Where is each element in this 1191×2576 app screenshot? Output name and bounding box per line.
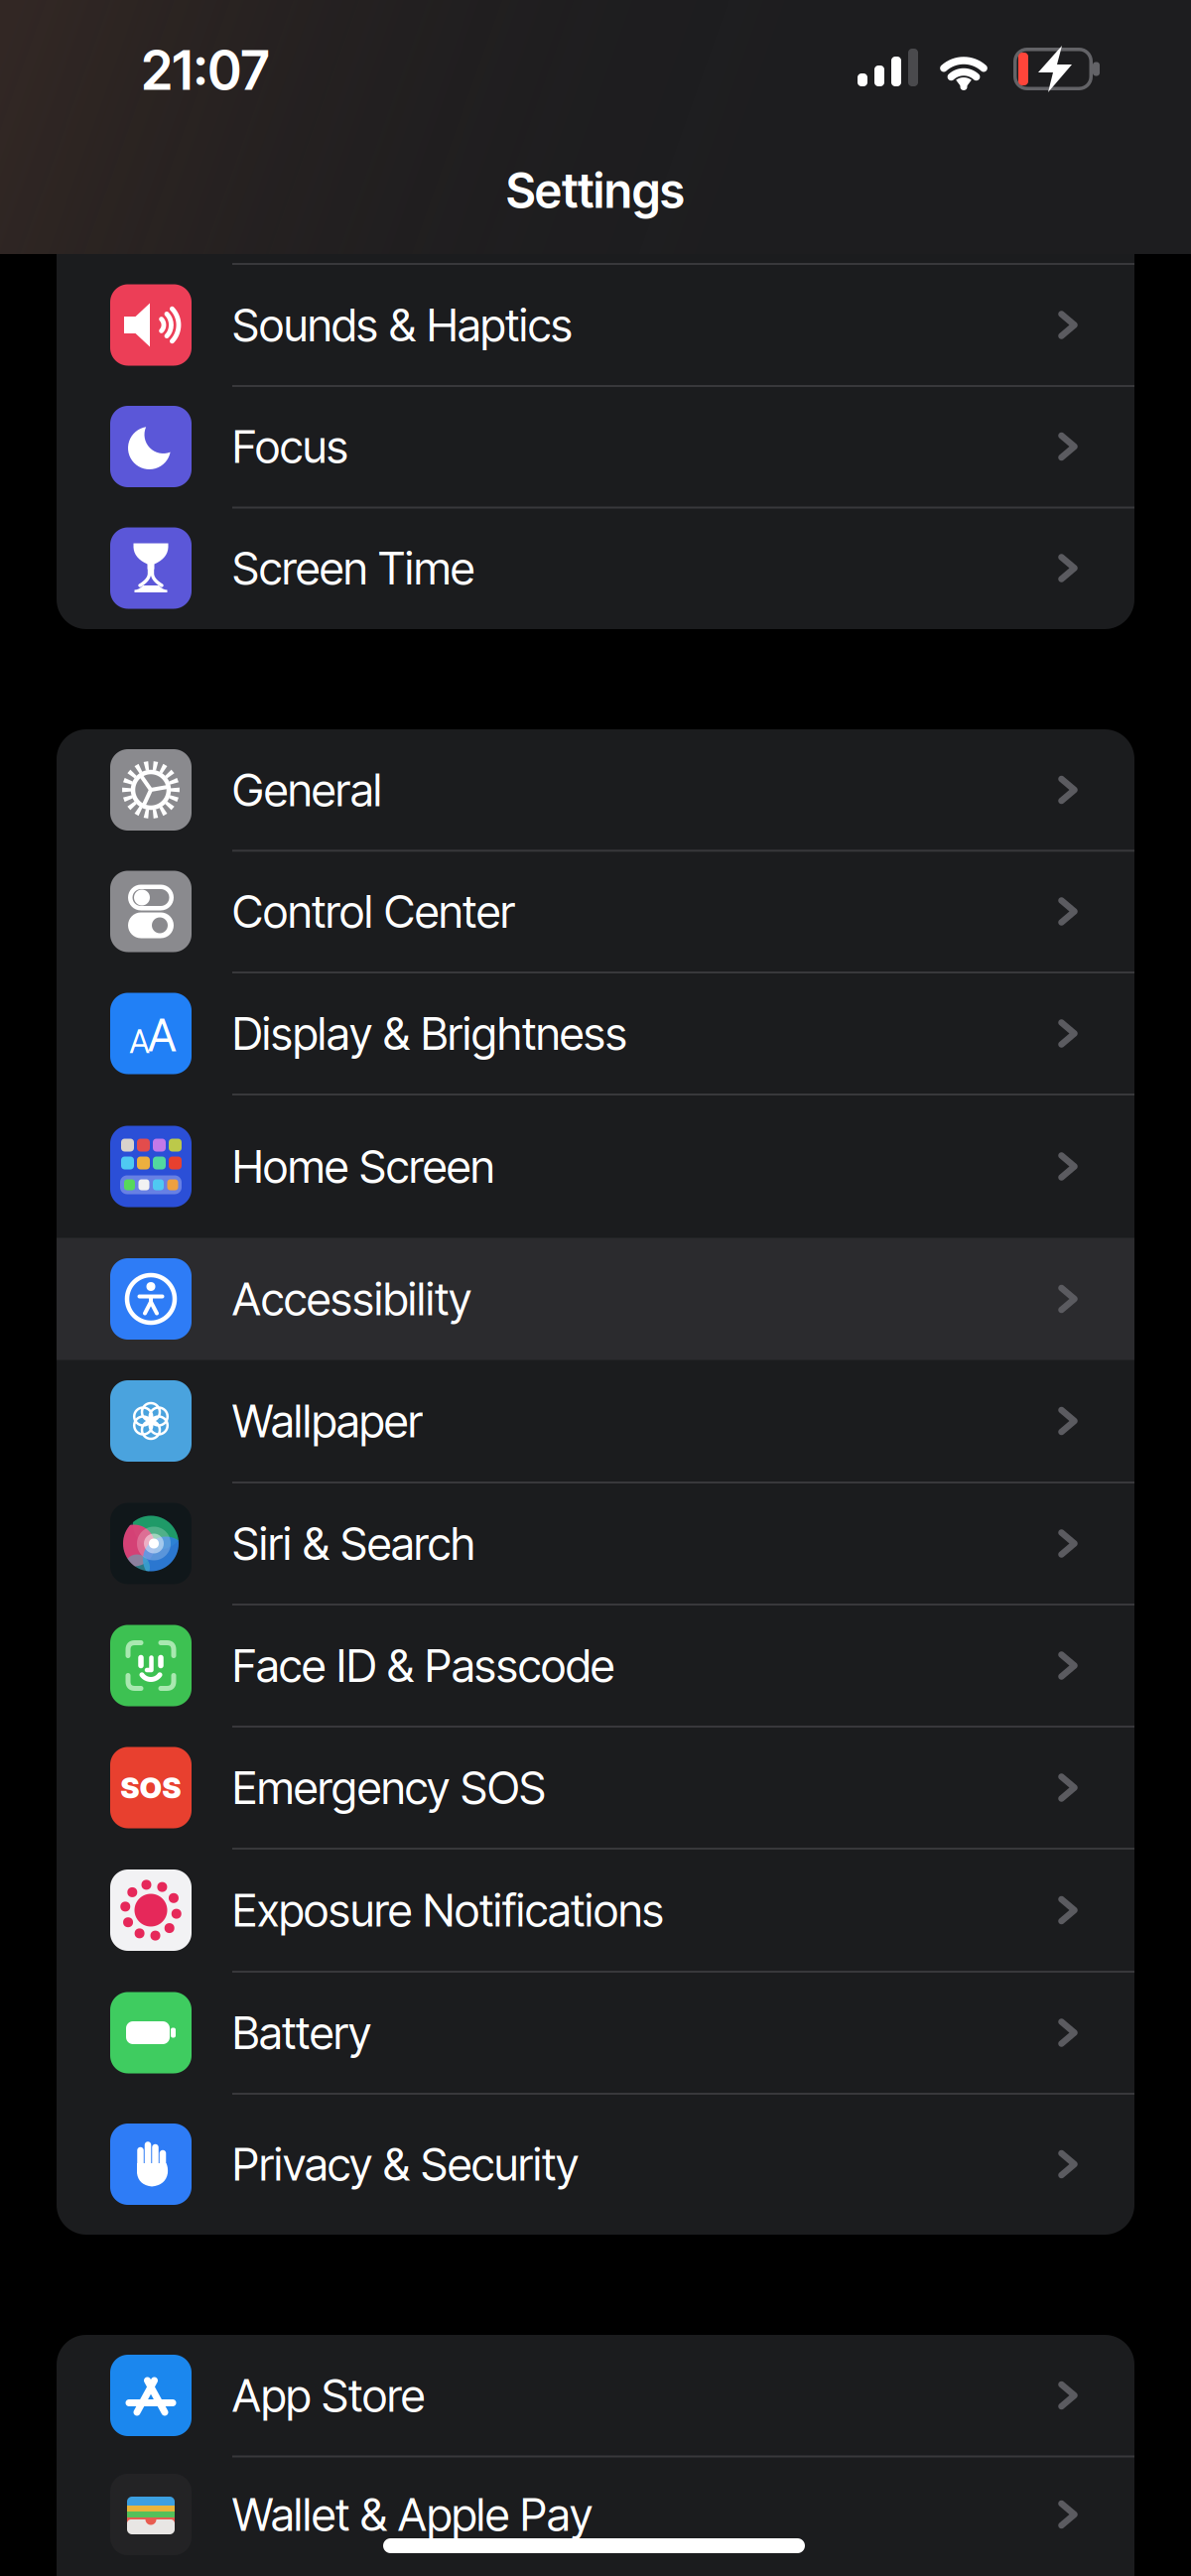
staticText: A	[148, 1008, 177, 1062]
staticText: SOS	[121, 1770, 181, 1805]
staticText: Siri & Search	[232, 1517, 475, 1570]
staticText: Exposure Notifications	[232, 1884, 664, 1937]
button[interactable]: Sounds & Haptics	[57, 264, 1134, 386]
button[interactable]: Face ID & Passcode	[57, 1605, 1134, 1727]
staticText: A	[130, 1023, 149, 1060]
button[interactable]: Focus	[57, 386, 1134, 508]
button[interactable]: Control Center	[57, 850, 1134, 972]
button[interactable]: Wallpaper	[57, 1359, 1134, 1482]
staticText: 21:07	[141, 39, 269, 102]
staticText: Focus	[232, 420, 348, 473]
button[interactable]: Battery	[57, 1972, 1134, 2094]
staticText: Sounds & Haptics	[232, 298, 573, 352]
staticText: Battery	[232, 2006, 371, 2059]
staticText: General	[232, 763, 382, 816]
staticText: Display & Brightness	[232, 1007, 627, 1060]
button[interactable]: SOS	[57, 1727, 1134, 1849]
button[interactable]: App Store	[57, 2334, 1134, 2456]
staticText: App Store	[232, 2369, 425, 2422]
staticText: Settings	[506, 162, 685, 219]
staticText: Emergency SOS	[232, 1761, 546, 1814]
button[interactable]: Home Screen	[57, 1095, 1134, 1238]
staticText: Control Center	[232, 885, 515, 938]
button[interactable]: General	[57, 729, 1134, 851]
button[interactable]: Exposure Notifications	[57, 1849, 1134, 1972]
staticText: Wallet & Apple Pay	[232, 2488, 593, 2541]
button[interactable]: Siri & Search	[57, 1482, 1134, 1605]
button[interactable]: Privacy & Security	[57, 2094, 1134, 2235]
staticText: Home Screen	[232, 1140, 494, 1193]
staticText: Accessibility	[232, 1272, 471, 1326]
button[interactable]: A	[57, 972, 1134, 1095]
button[interactable]: Accessibility	[57, 1238, 1134, 1360]
staticText: Wallpaper	[232, 1394, 423, 1448]
button[interactable]: Screen Time	[57, 507, 1134, 629]
staticText: Privacy & Security	[232, 2138, 579, 2191]
staticText: Screen Time	[232, 542, 474, 595]
staticText: Face ID & Passcode	[232, 1639, 614, 1692]
button[interactable]: Wallet & Apple Pay	[57, 2453, 1134, 2576]
